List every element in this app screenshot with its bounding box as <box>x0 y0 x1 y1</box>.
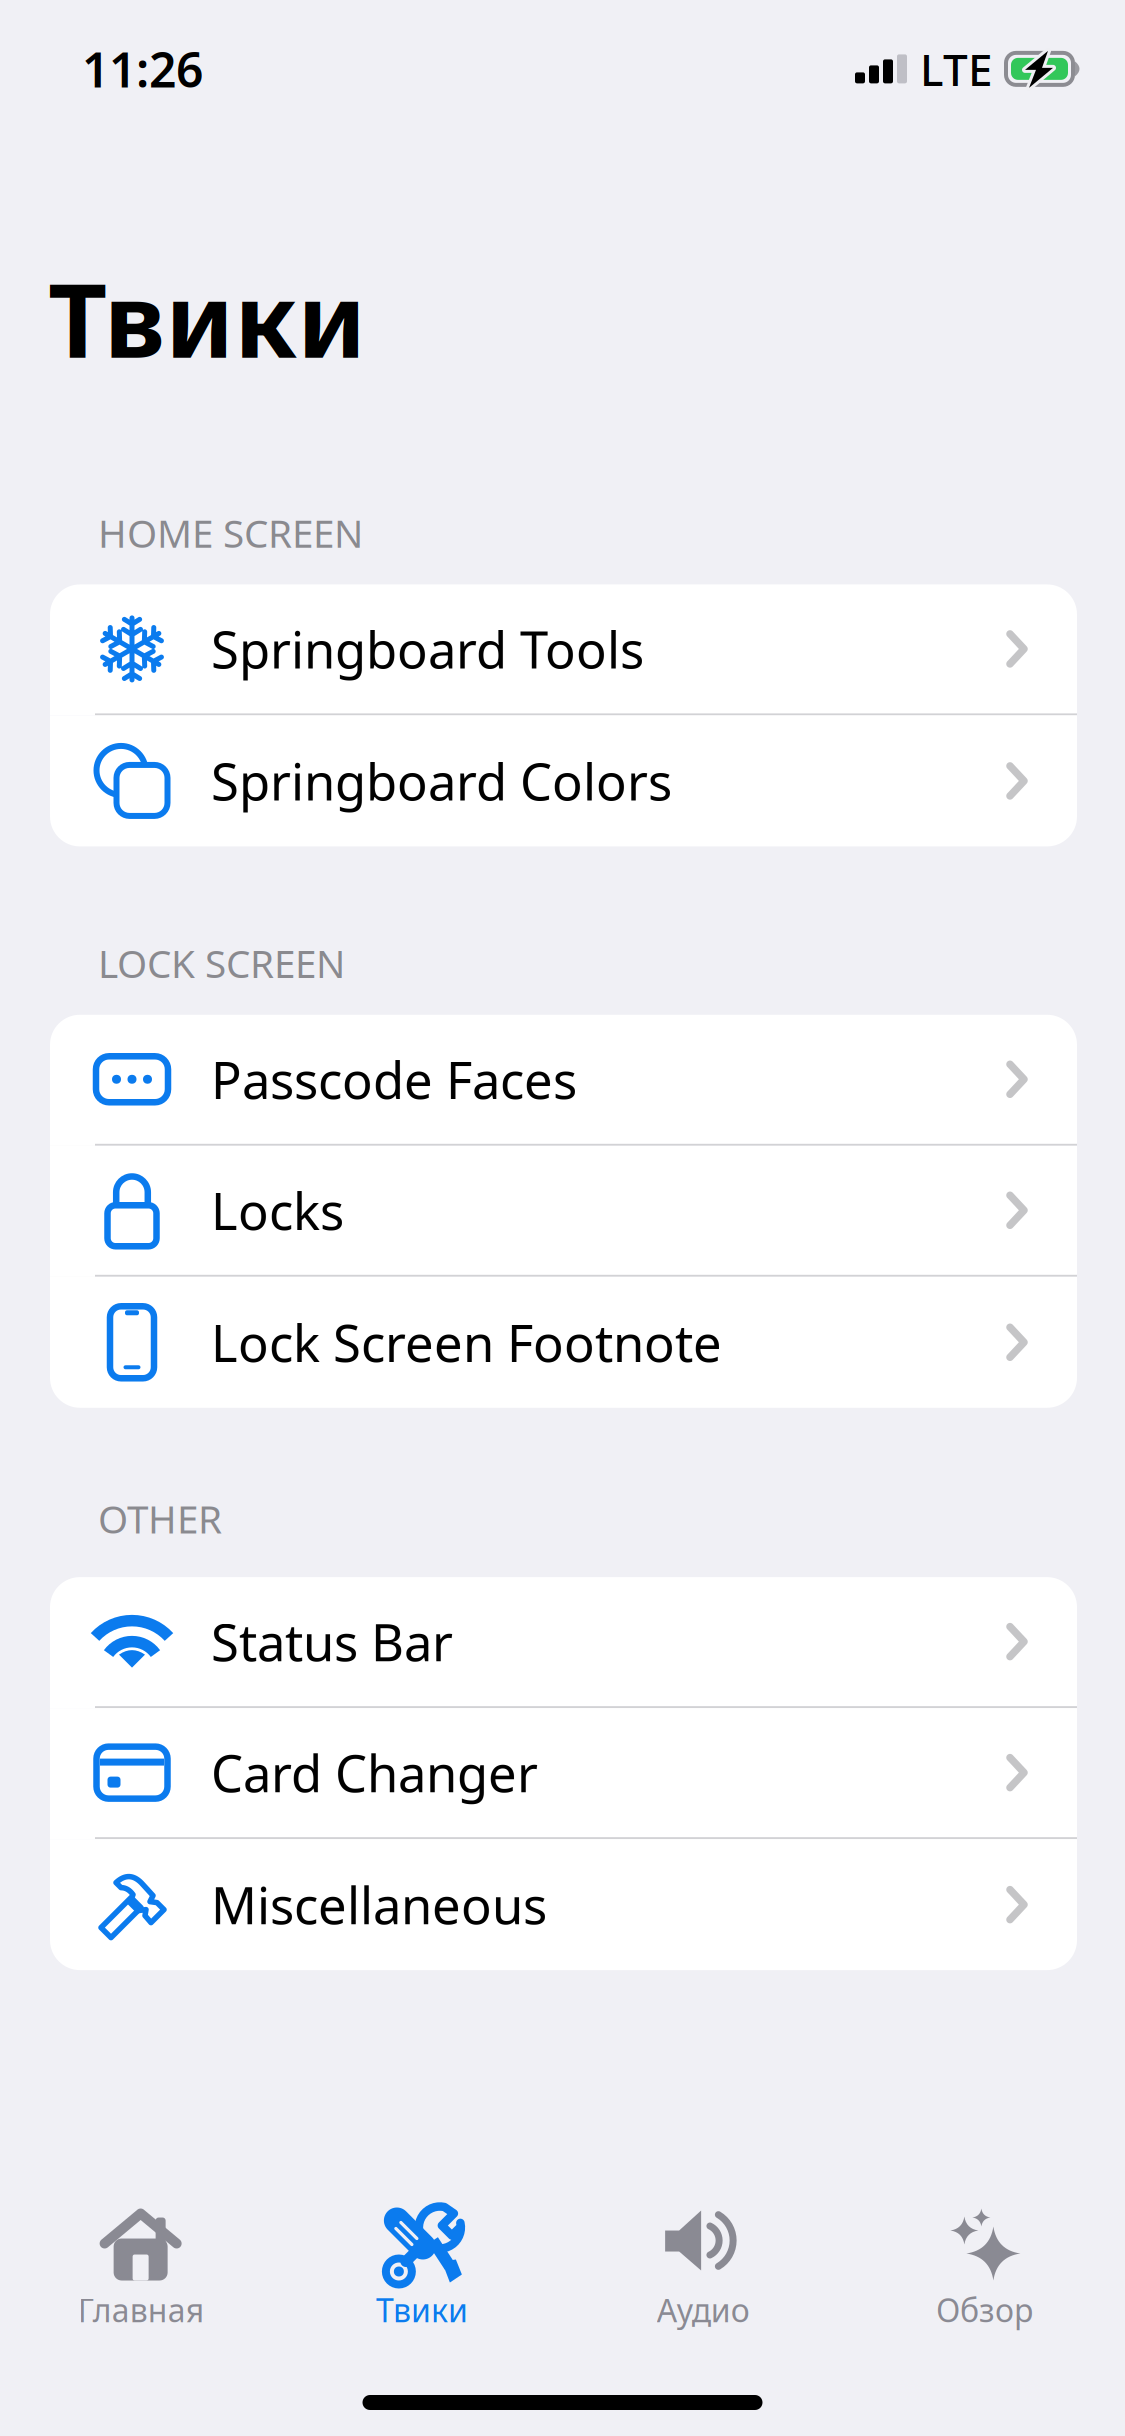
staticText: Твики <box>376 2288 468 2331</box>
button[interactable]: Твики <box>281 2200 562 2331</box>
staticText: Главная <box>78 2288 204 2331</box>
button[interactable]: Status Bar <box>50 1577 1077 1708</box>
button[interactable]: Главная <box>0 2200 281 2331</box>
staticText: Springboard Colors <box>211 747 672 815</box>
button[interactable]: Аудио <box>562 2200 844 2331</box>
staticText: Аудио <box>657 2288 750 2331</box>
staticText: Status Bar <box>211 1608 453 1675</box>
button[interactable]: Springboard Tools <box>50 584 1077 715</box>
staticText: Твики <box>48 250 366 386</box>
staticText: Card Changer <box>211 1739 538 1806</box>
button[interactable]: Lock Screen Footnote <box>50 1277 1077 1408</box>
button[interactable]: Обзор <box>844 2200 1125 2331</box>
staticText: LOCK SCREEN <box>98 937 345 989</box>
button[interactable]: Passcode Faces <box>50 1015 1077 1146</box>
staticText: Miscellaneous <box>211 1871 547 1938</box>
staticText: 11:26 <box>82 37 203 101</box>
staticText: Passcode Faces <box>211 1046 577 1113</box>
staticText: Lock Screen Footnote <box>211 1309 722 1376</box>
button[interactable]: Card Changer <box>50 1708 1077 1839</box>
staticText: HOME SCREEN <box>98 507 363 558</box>
button[interactable]: Springboard Colors <box>50 715 1077 846</box>
staticText: OTHER <box>98 1493 222 1544</box>
button[interactable]: Locks <box>50 1146 1077 1277</box>
staticText: LTE <box>920 40 993 98</box>
staticText: Springboard Tools <box>211 615 644 683</box>
button[interactable]: Miscellaneous <box>50 1839 1077 1970</box>
staticText: Обзор <box>936 2288 1033 2331</box>
staticText: Locks <box>211 1177 344 1244</box>
